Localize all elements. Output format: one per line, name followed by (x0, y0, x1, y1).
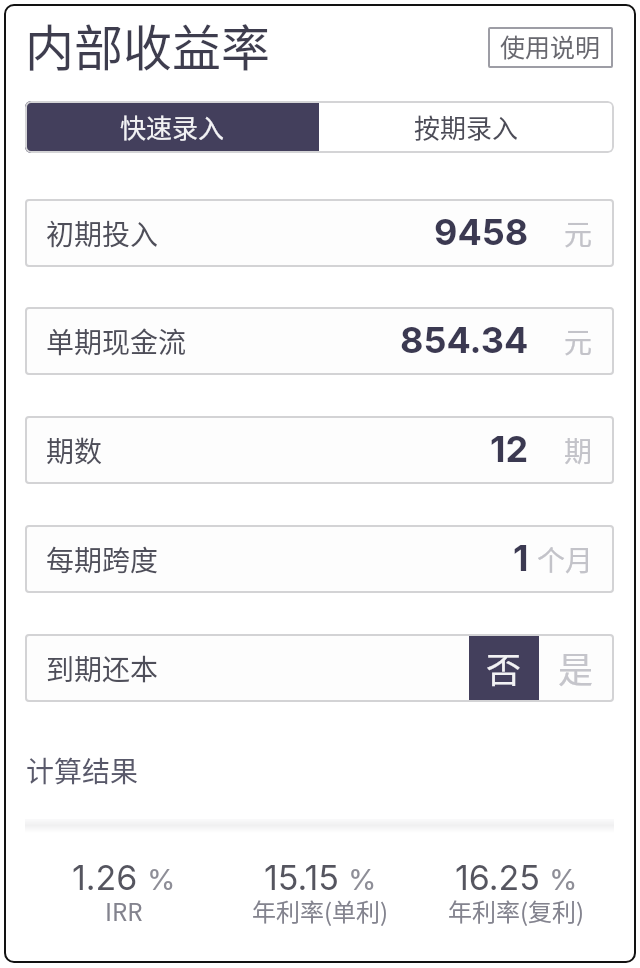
staticText: 元 (564, 213, 593, 254)
staticText: 16.25 (455, 857, 540, 898)
staticText: 初期投入 (46, 213, 159, 254)
staticText: 单期现金流 (46, 321, 187, 362)
button[interactable]: 每期跨度 (25, 525, 614, 593)
staticText: 9458 (434, 210, 529, 254)
staticText: % (348, 862, 377, 897)
staticText: 个月 (537, 539, 593, 580)
staticText: 期 (564, 430, 593, 471)
staticText: 1.26 (72, 857, 138, 898)
staticText: 年利率(单利) (252, 893, 389, 928)
staticText: 否 (486, 642, 522, 693)
staticText: 1 (513, 536, 529, 580)
button[interactable]: 初期投入 (25, 199, 614, 267)
staticText: 12 (490, 427, 529, 471)
staticText: % (147, 862, 176, 897)
staticText: 期数 (46, 430, 103, 471)
staticText: 每期跨度 (46, 539, 159, 580)
button[interactable]: 是 (539, 636, 612, 700)
staticText: 是 (558, 642, 594, 693)
button[interactable]: 使用说明 (488, 27, 613, 68)
button[interactable]: 快速录入 (25, 101, 319, 153)
staticText: 计算结果 (26, 750, 139, 791)
staticText: 使用说明 (500, 28, 601, 64)
staticText: 元 (564, 321, 593, 362)
button[interactable]: 否 (469, 636, 539, 700)
button[interactable]: 单期现金流 (25, 307, 614, 375)
staticText: 内部收益率 (25, 9, 271, 80)
staticText: 快速录入 (120, 108, 225, 146)
staticText: 15.15 (264, 857, 339, 898)
staticText: 854.34 (400, 318, 529, 362)
button[interactable]: 按期录入 (319, 101, 614, 153)
staticText: 按期录入 (414, 108, 519, 146)
staticText: 到期还本 (46, 648, 159, 689)
button[interactable]: 期数 (25, 416, 614, 484)
staticText: % (549, 862, 578, 897)
staticText: IRR (105, 893, 143, 928)
staticText: 年利率(复利) (448, 893, 585, 928)
